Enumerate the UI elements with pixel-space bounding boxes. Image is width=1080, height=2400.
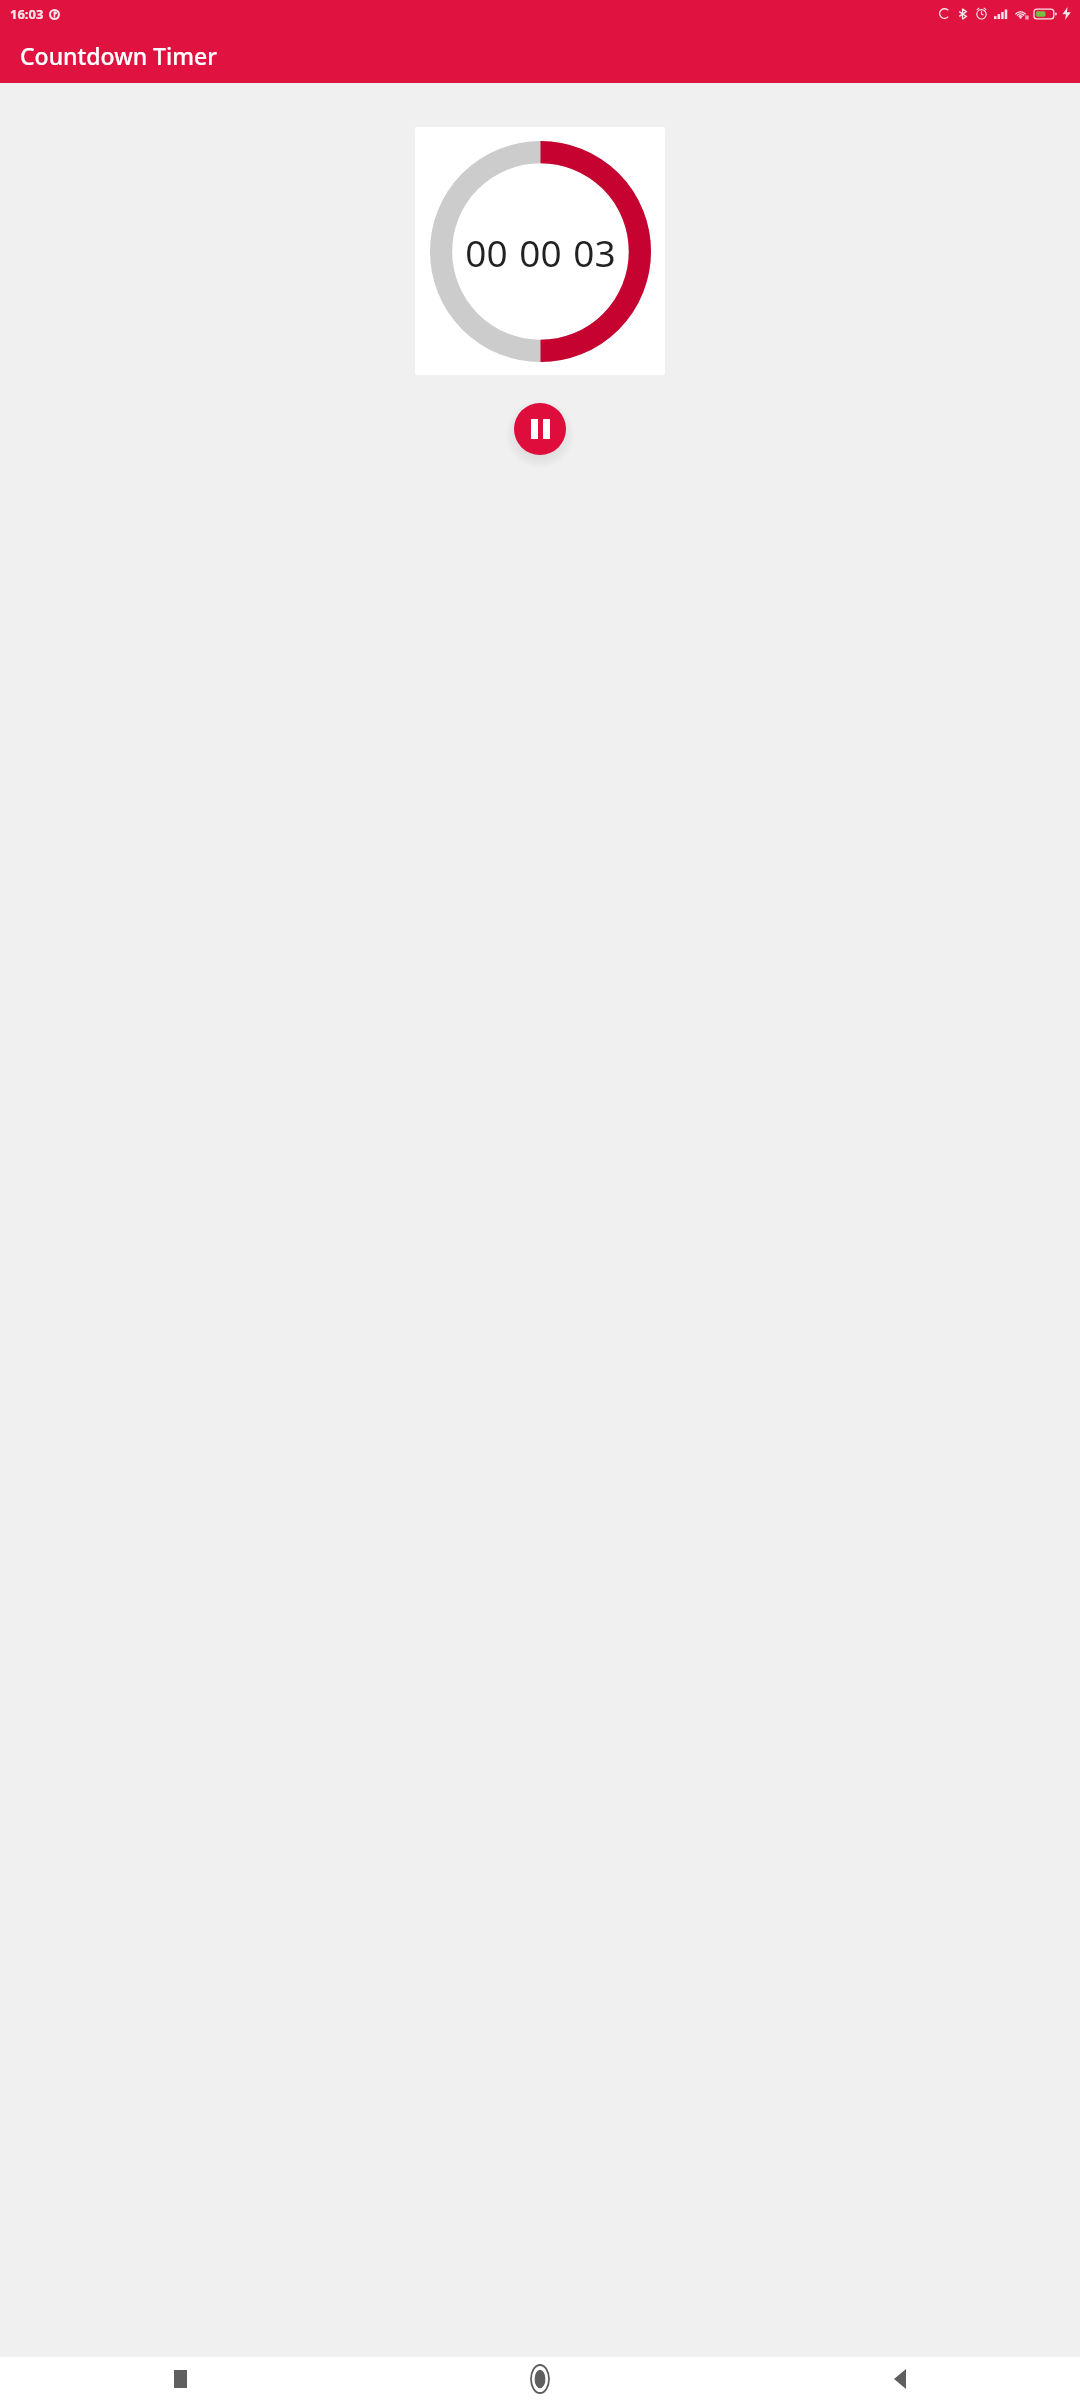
staticText: 00 (465, 227, 508, 277)
staticText: 16:03 (10, 5, 44, 23)
button[interactable]: Home (360, 2357, 720, 2400)
button[interactable]: Back (720, 2357, 1080, 2400)
button[interactable]: Recent apps (0, 2357, 360, 2400)
staticText: 00 (519, 227, 562, 277)
staticText: 03 (573, 227, 616, 277)
staticText: Countdown Timer (20, 40, 217, 71)
button[interactable]: Pause (514, 403, 566, 455)
